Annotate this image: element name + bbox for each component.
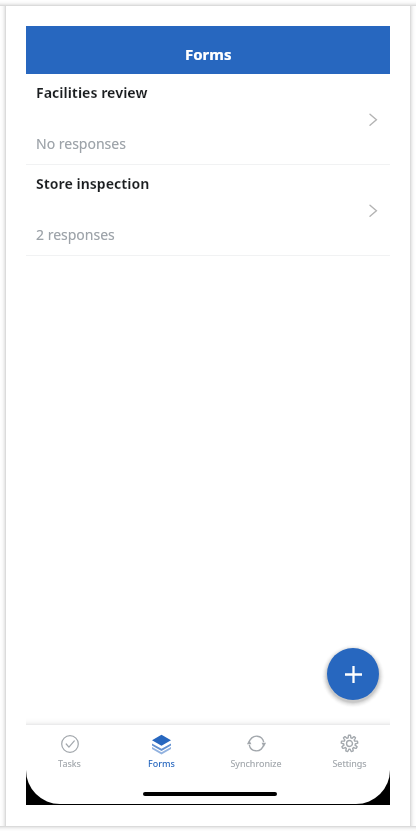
- button[interactable]: Forms: [116, 725, 206, 769]
- button[interactable]: Forms: [26, 26, 390, 74]
- staticText: Forms: [185, 44, 232, 64]
- button[interactable]: Facilities review: [26, 74, 390, 165]
- staticText: 2 responses: [36, 225, 115, 244]
- button[interactable]: Tasks: [26, 725, 114, 769]
- button[interactable]: Synchronize: [211, 725, 301, 769]
- staticText: Tasks: [58, 757, 81, 769]
- button[interactable]: Settings: [304, 725, 390, 769]
- button[interactable]: Store inspection: [26, 165, 390, 256]
- staticText: Store inspection: [36, 174, 150, 193]
- staticText: Forms: [148, 757, 175, 769]
- staticText: Synchronize: [230, 757, 282, 769]
- button[interactable]: Add form: [327, 648, 379, 700]
- staticText: No responses: [36, 134, 126, 153]
- staticText: Settings: [332, 757, 367, 769]
- staticText: Facilities review: [36, 83, 148, 102]
